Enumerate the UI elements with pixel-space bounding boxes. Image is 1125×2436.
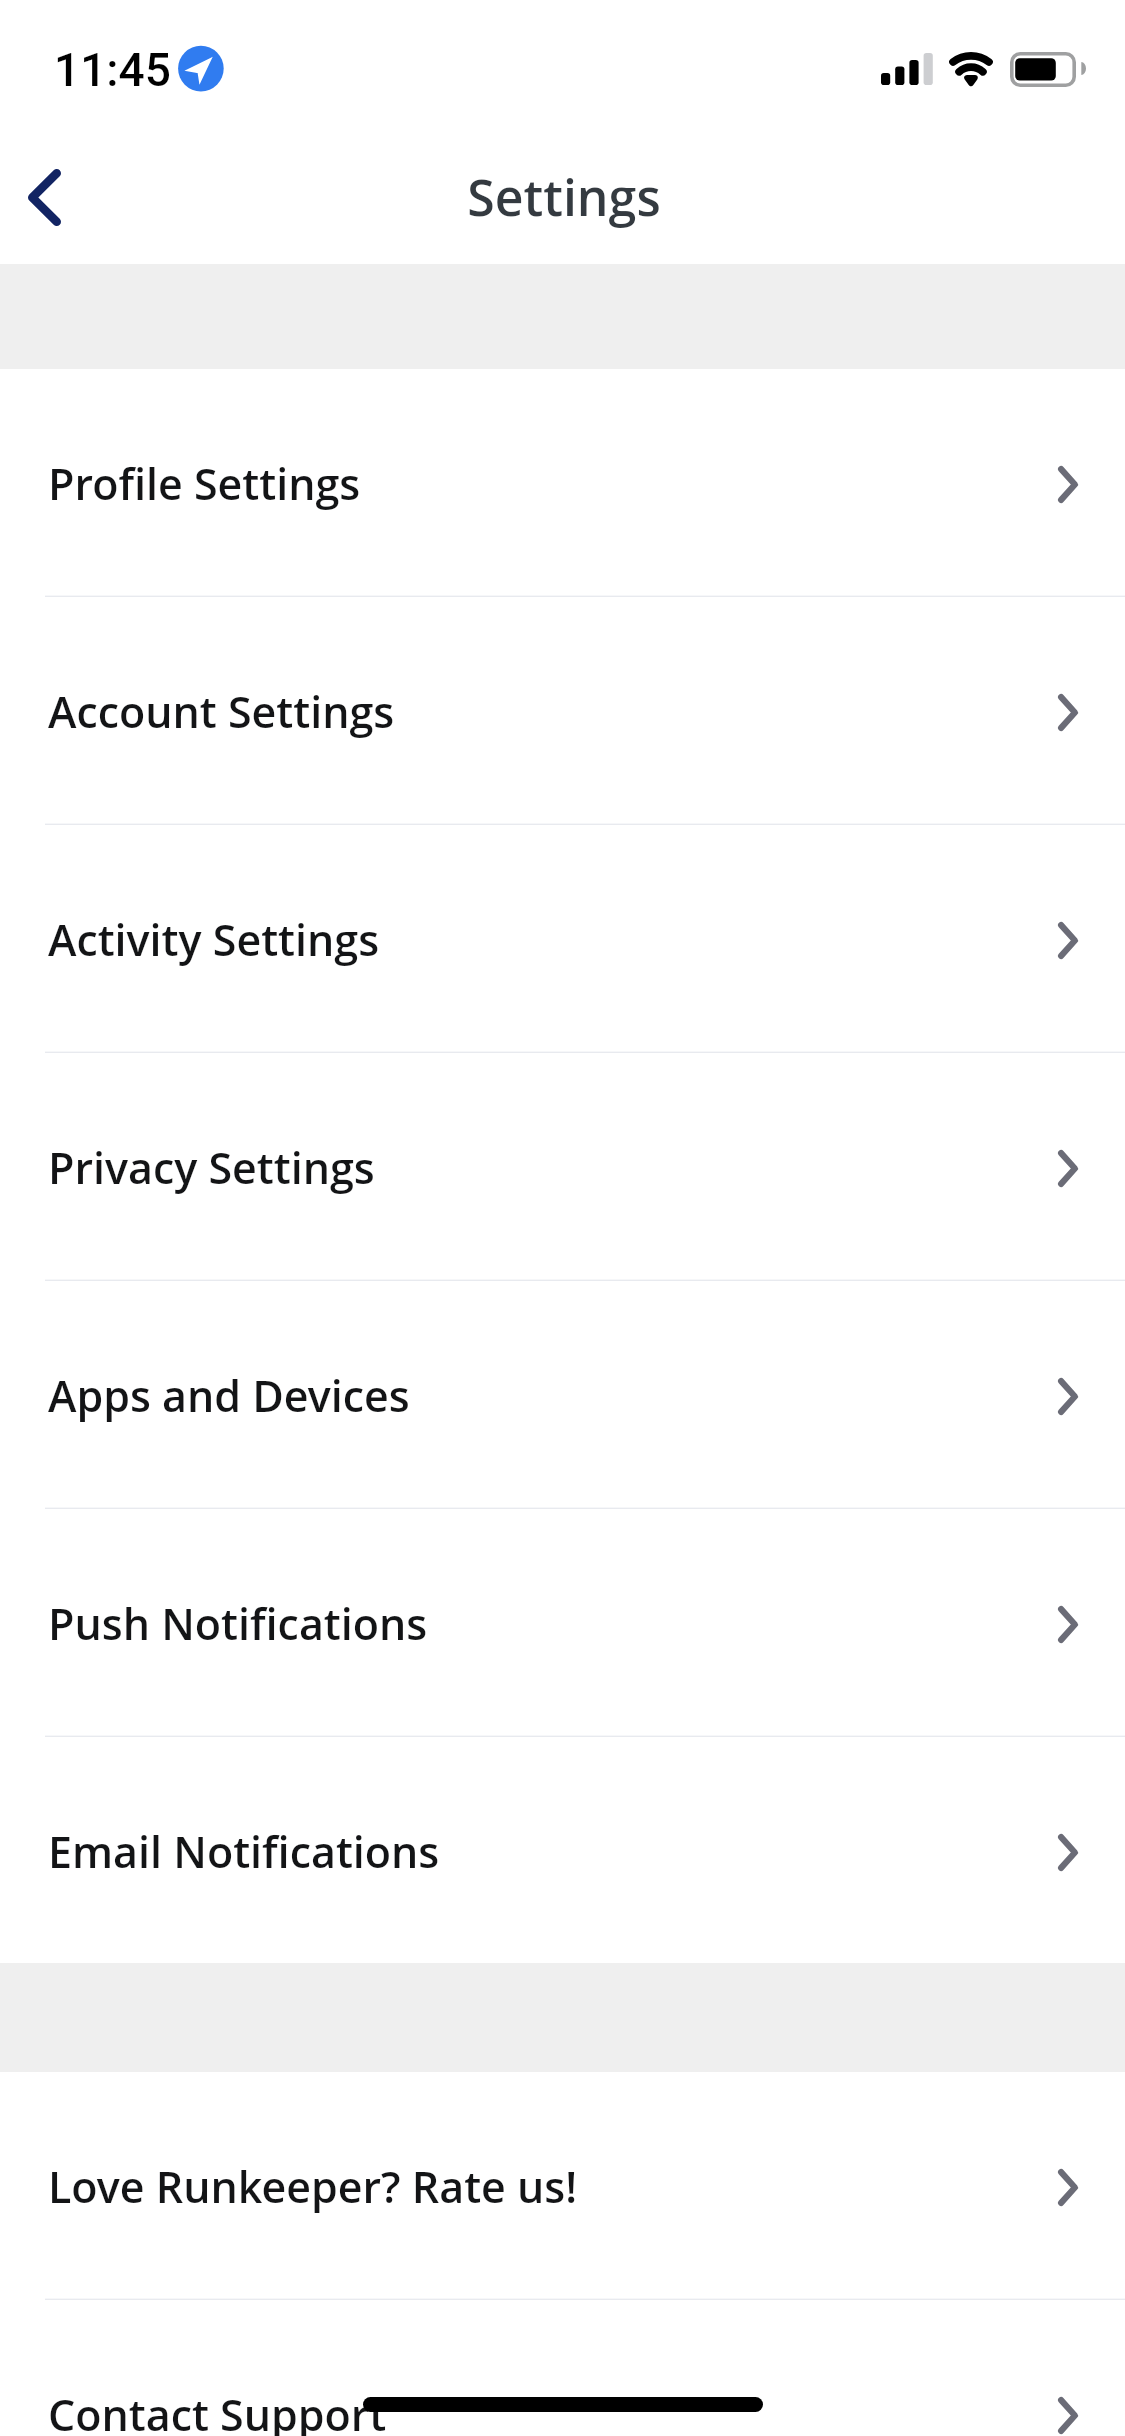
- staticText: Profile Settings: [48, 454, 361, 513]
- staticText: Settings: [467, 163, 661, 231]
- button[interactable]: Back: [0, 144, 90, 254]
- staticText: 11:45: [54, 43, 171, 97]
- button[interactable]: Privacy Settings: [0, 1053, 1125, 1279]
- staticText: Contact Support: [48, 2385, 387, 2436]
- button[interactable]: Love Runkeeper? Rate us!: [0, 2072, 1125, 2298]
- button[interactable]: Account Settings: [0, 597, 1125, 823]
- button[interactable]: Profile Settings: [0, 369, 1125, 595]
- staticText: Email Notifications: [48, 1822, 440, 1881]
- button[interactable]: Apps and Devices: [0, 1281, 1125, 1507]
- staticText: Activity Settings: [48, 910, 380, 969]
- staticText: Privacy Settings: [48, 1138, 375, 1197]
- button[interactable]: Contact Support: [0, 2300, 1125, 2436]
- staticText: Apps and Devices: [48, 1366, 410, 1425]
- button[interactable]: Email Notifications: [0, 1737, 1125, 1963]
- button[interactable]: Activity Settings: [0, 825, 1125, 1051]
- button[interactable]: Push Notifications: [0, 1509, 1125, 1735]
- staticText: Account Settings: [48, 682, 395, 741]
- staticText: Love Runkeeper? Rate us!: [48, 2157, 578, 2216]
- staticText: Push Notifications: [48, 1594, 428, 1653]
